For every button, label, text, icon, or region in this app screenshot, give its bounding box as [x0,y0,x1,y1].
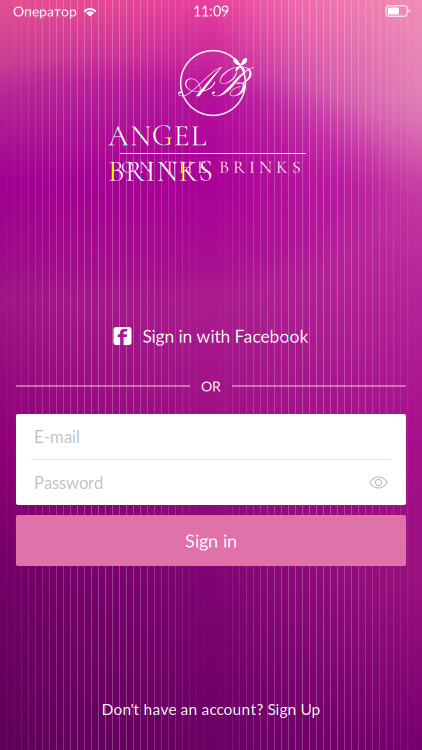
staticText: Sign in [185,530,237,551]
staticText: Sign in with Facebook [142,325,308,346]
staticText: E-mail [34,427,80,446]
staticText: Don't have an account? Sign Up [101,700,320,718]
staticText: AB [178,59,246,113]
staticText: Оператор [13,3,77,19]
staticText: Password [34,473,103,492]
button[interactable]: Sign in [16,515,406,566]
staticText: O N T H E B R I N K S [121,156,301,178]
staticText: OR [201,378,221,394]
button[interactable]: Don't have an account? Sign Up [79,691,342,727]
staticText: ANGEL BRINKS [108,118,320,154]
button[interactable]: Sign in with Facebook [97,316,324,355]
staticText: 11:09 [193,2,229,20]
